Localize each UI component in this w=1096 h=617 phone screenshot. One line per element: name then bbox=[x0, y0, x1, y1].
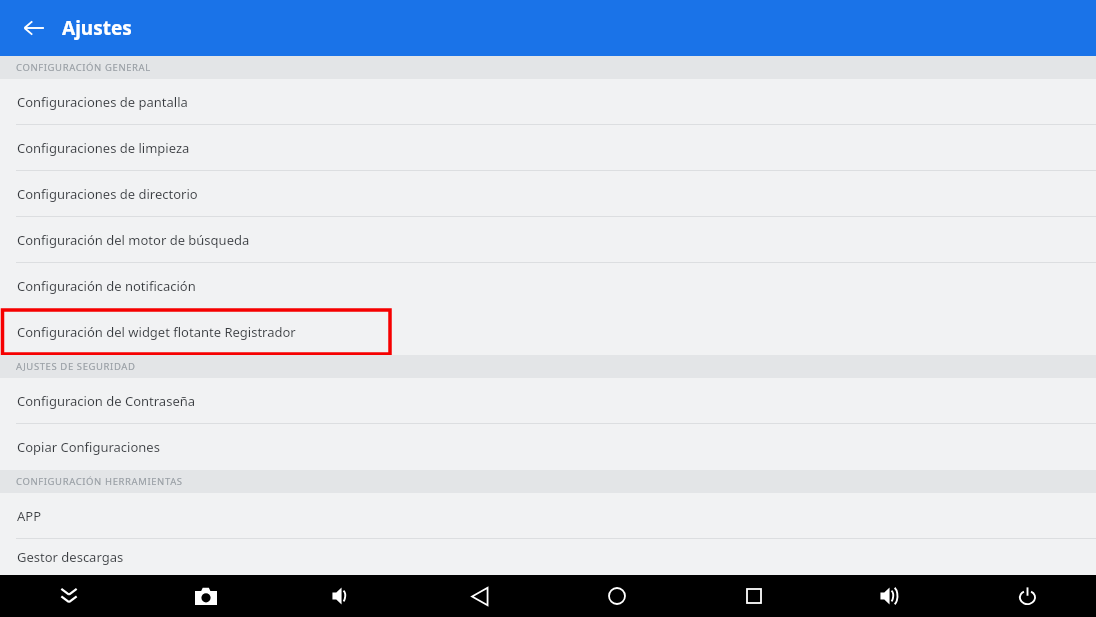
button[interactable]: Screenshot bbox=[137, 575, 274, 617]
button[interactable]: Back bbox=[411, 575, 548, 617]
staticText: Configuración del motor de búsqueda bbox=[17, 231, 250, 249]
staticText: AJUSTES DE SEGURIDAD bbox=[16, 360, 136, 373]
button[interactable]: Home bbox=[548, 575, 685, 617]
staticText: Copiar Configuraciones bbox=[17, 438, 160, 456]
staticText: CONFIGURACIÓN HERRAMIENTAS bbox=[16, 475, 183, 488]
staticText: Configuracion de Contraseña bbox=[17, 392, 196, 410]
button[interactable]: Collapse bbox=[0, 575, 137, 617]
button[interactable]: Volume down bbox=[274, 575, 411, 617]
button[interactable]: Copiar Configuraciones bbox=[0, 424, 1096, 470]
staticText: Ajustes bbox=[62, 15, 132, 41]
button[interactable]: Configuraciones de directorio bbox=[0, 171, 1096, 217]
staticText: APP bbox=[17, 507, 42, 525]
button[interactable]: APP bbox=[0, 493, 1096, 539]
button[interactable]: Configuracion de Contraseña bbox=[0, 378, 1096, 424]
button[interactable]: Recents bbox=[685, 575, 822, 617]
button[interactable]: Configuraciones de limpieza bbox=[0, 125, 1096, 171]
button[interactable]: Configuración del widget flotante Regist… bbox=[0, 309, 1096, 355]
button[interactable]: Volume up bbox=[822, 575, 959, 617]
button[interactable]: Configuración del motor de búsqueda bbox=[0, 217, 1096, 263]
staticText: Configuración del widget flotante Regist… bbox=[17, 323, 296, 341]
staticText: Gestor descargas bbox=[17, 548, 124, 566]
staticText: Configuraciones de pantalla bbox=[17, 93, 188, 111]
staticText: Configuraciones de directorio bbox=[17, 185, 198, 203]
button[interactable]: Gestor descargas bbox=[0, 539, 1096, 575]
staticText: CONFIGURACIÓN GENERAL bbox=[16, 61, 151, 74]
button[interactable]: Power bbox=[959, 575, 1096, 617]
button[interactable]: Configuraciones de pantalla bbox=[0, 79, 1096, 125]
staticText: Configuraciones de limpieza bbox=[17, 139, 190, 157]
staticText: Configuración de notificación bbox=[17, 277, 196, 295]
button[interactable]: Configuración de notificación bbox=[0, 263, 1096, 309]
button[interactable]: Back bbox=[14, 8, 54, 48]
